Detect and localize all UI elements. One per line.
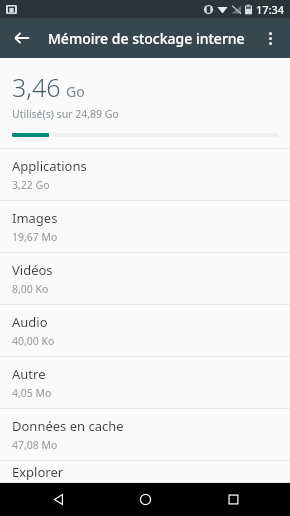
staticText: 47,08 Mo [12, 438, 58, 452]
staticText: Audio [12, 313, 48, 331]
staticText: 3,22 Go [12, 178, 50, 192]
button[interactable]: Applications [0, 149, 290, 201]
staticText: 8,00 Ko [12, 282, 49, 296]
staticText: Vidéos [12, 261, 53, 279]
staticText: 4,05 Mo [12, 386, 52, 400]
button[interactable]: Recent apps [203, 483, 263, 516]
staticText: Autre [12, 365, 46, 383]
button[interactable]: Back [28, 483, 88, 516]
staticText: Go [66, 82, 85, 101]
staticText: 17:34 [256, 2, 285, 17]
staticText: Utilisé(s) sur 24,89 Go [12, 107, 119, 121]
staticText: 19,67 Mo [12, 230, 58, 244]
button[interactable]: Home [115, 483, 175, 516]
button[interactable]: Autre [0, 357, 290, 409]
button[interactable]: Images [0, 201, 290, 253]
button[interactable]: Explorer [0, 461, 290, 483]
staticText: 40,00 Ko [12, 334, 55, 348]
staticText: Mémoire de stockage interne [48, 29, 245, 48]
button[interactable]: Données en cache [0, 409, 290, 461]
button[interactable]: More options [252, 20, 288, 56]
staticText: 3,46 [12, 70, 61, 104]
button[interactable]: Back [4, 20, 40, 56]
button[interactable]: Vidéos [0, 253, 290, 305]
staticText: Données en cache [12, 417, 124, 435]
button[interactable]: Audio [0, 305, 290, 357]
staticText: Explorer [12, 463, 64, 481]
staticText: Applications [12, 157, 87, 175]
staticText: Images [12, 209, 58, 227]
